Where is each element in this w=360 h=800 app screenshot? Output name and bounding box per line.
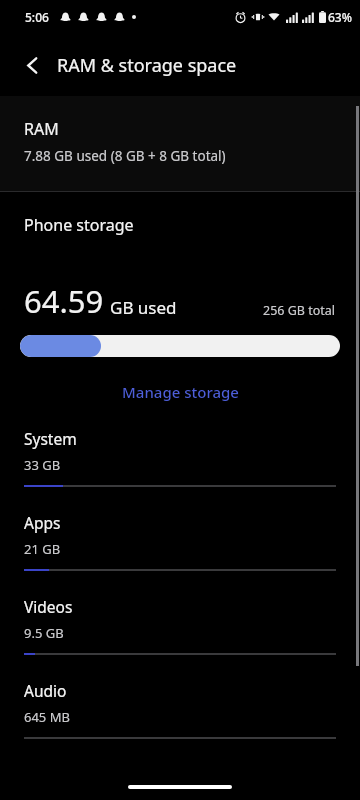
staticText: RAM & storage space xyxy=(57,53,237,78)
staticText: 5:06 xyxy=(25,9,49,25)
button[interactable]: RAM xyxy=(0,96,360,191)
staticText: Audio xyxy=(24,680,67,701)
staticText: RAM xyxy=(24,118,59,140)
staticText: System xyxy=(24,428,77,449)
staticText: 33 GB xyxy=(24,456,61,474)
staticText: GB used xyxy=(110,296,177,319)
button[interactable]: Videos xyxy=(0,596,360,680)
button[interactable]: Audio xyxy=(0,680,360,764)
button[interactable]: Apps xyxy=(0,512,360,596)
button[interactable]: System xyxy=(0,428,360,512)
staticText: Manage storage xyxy=(122,382,239,402)
staticText: Apps xyxy=(24,512,61,533)
staticText: 9.5 GB xyxy=(24,624,64,642)
staticText: 645 MB xyxy=(24,708,70,726)
staticText: Phone storage xyxy=(24,214,134,236)
button[interactable]: Back xyxy=(10,43,54,87)
staticText: 21 GB xyxy=(24,540,61,558)
staticText: 7.88 GB used (8 GB + 8 GB total) xyxy=(24,147,226,165)
staticText: Videos xyxy=(24,596,73,617)
staticText: 256 GB total xyxy=(263,302,336,319)
staticText: 64.59 xyxy=(24,280,104,322)
button[interactable]: Manage storage xyxy=(112,378,249,406)
staticText: 63% xyxy=(328,9,352,25)
